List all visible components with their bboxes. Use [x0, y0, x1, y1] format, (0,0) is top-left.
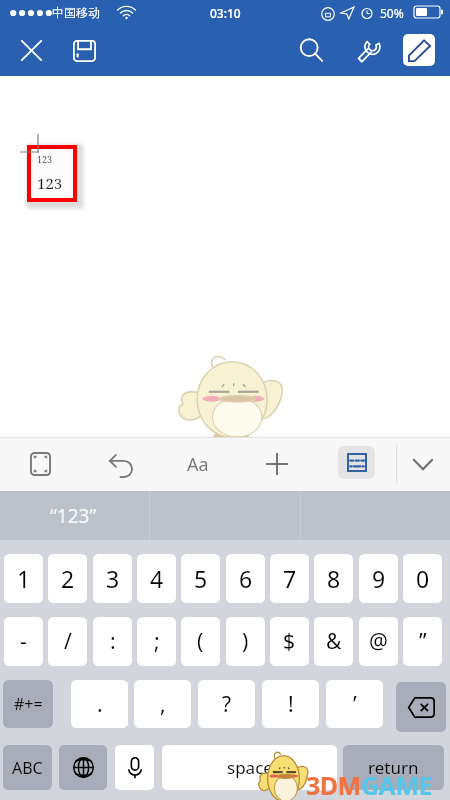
button[interactable]: 7	[270, 554, 309, 603]
staticText: 1	[17, 563, 31, 594]
staticText: 5	[194, 563, 208, 594]
button[interactable]: &	[314, 617, 353, 666]
button[interactable]: ABC	[3, 745, 52, 790]
staticText: space	[227, 756, 273, 779]
staticText: 2	[61, 563, 75, 594]
staticText: “123”	[50, 503, 97, 529]
button[interactable]: 6	[226, 554, 265, 603]
staticText: -	[20, 627, 27, 656]
button[interactable]: Tools	[349, 30, 390, 71]
button[interactable]: -	[4, 617, 43, 666]
button[interactable]: 5	[181, 554, 220, 603]
button[interactable]: space	[162, 745, 337, 790]
staticText: 0	[416, 563, 430, 594]
button[interactable]: :	[93, 617, 132, 666]
button[interactable]: $	[270, 617, 309, 666]
button[interactable]: Keyboard	[338, 446, 375, 479]
staticText: !	[288, 690, 294, 719]
button[interactable]: Backspace	[396, 682, 446, 732]
staticText: (	[197, 627, 204, 656]
button[interactable]: )	[226, 617, 265, 666]
staticText: 123	[37, 153, 53, 165]
button[interactable]: 0	[403, 554, 442, 603]
staticText: 7	[283, 563, 297, 594]
staticText: /	[64, 627, 72, 656]
button[interactable]: 8	[314, 554, 353, 603]
staticText: &	[326, 627, 342, 656]
staticText: :	[110, 627, 116, 656]
button[interactable]: Dictate	[115, 745, 154, 790]
button[interactable]: @	[359, 617, 398, 666]
button[interactable]: 2	[48, 554, 87, 603]
staticText: 6	[239, 563, 253, 594]
button[interactable]: Close	[11, 30, 52, 71]
staticText: ’	[353, 690, 357, 719]
staticText: 03:10	[210, 5, 241, 21]
button[interactable]: ;	[137, 617, 176, 666]
button[interactable]: ”	[403, 617, 442, 666]
staticText: GAME	[361, 768, 432, 800]
staticText: ?	[222, 690, 232, 719]
button[interactable]: /	[48, 617, 87, 666]
button[interactable]: ,	[134, 680, 191, 728]
staticText: 123	[37, 173, 63, 193]
staticText: ABC	[12, 757, 43, 779]
button[interactable]: Search	[291, 30, 332, 71]
button[interactable]: ?	[198, 680, 255, 728]
button[interactable]: 9	[359, 554, 398, 603]
button[interactable]: return	[343, 745, 444, 790]
button[interactable]: !	[262, 680, 319, 728]
staticText: 4	[150, 563, 164, 594]
button[interactable]: (	[181, 617, 220, 666]
staticText: Aa	[187, 452, 209, 477]
button[interactable]: ’	[326, 680, 383, 728]
staticText: 中国移动	[52, 5, 100, 20]
staticText: #+=	[14, 693, 43, 715]
staticText: ”	[419, 627, 427, 656]
button[interactable]: 3	[93, 554, 132, 603]
button[interactable]: 4	[137, 554, 176, 603]
staticText: .	[97, 690, 103, 719]
staticText: 3	[106, 563, 120, 594]
staticText: 50%	[380, 5, 404, 21]
staticText: ;	[154, 627, 160, 656]
staticText: )	[242, 627, 249, 656]
button[interactable]: Undo	[98, 442, 142, 486]
button[interactable]: Insert	[255, 442, 299, 486]
button[interactable]: #+=	[3, 680, 53, 728]
button[interactable]: Save	[64, 30, 105, 71]
staticText: @	[369, 627, 388, 656]
staticText: 9	[372, 563, 386, 594]
staticText: $	[283, 627, 296, 656]
button[interactable]: “123”	[0, 491, 149, 540]
button[interactable]: Edit	[403, 34, 435, 66]
button[interactable]: .	[71, 680, 128, 728]
staticText: ,	[160, 690, 166, 719]
staticText: return	[368, 756, 419, 779]
staticText: 8	[327, 563, 341, 594]
button[interactable]: Font	[176, 442, 220, 486]
staticText: 3DM	[306, 768, 361, 800]
button[interactable]: 1	[4, 554, 43, 603]
button[interactable]: Select	[18, 442, 62, 486]
button[interactable]: Language	[59, 745, 107, 790]
button[interactable]: Hide keyboard	[401, 442, 445, 486]
